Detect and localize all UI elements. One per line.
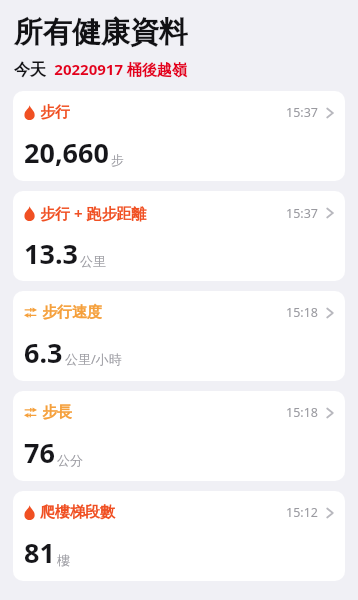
staticText: 15:18 bbox=[286, 304, 318, 321]
staticText: 所有健康資料 bbox=[14, 14, 188, 51]
other: Activity bbox=[24, 105, 35, 120]
staticText: 76 bbox=[24, 434, 55, 471]
button[interactable]: Pace bbox=[13, 291, 345, 381]
staticText: 公里/小時 bbox=[65, 350, 122, 368]
staticText: 樓 bbox=[57, 552, 70, 568]
staticText: 公分 bbox=[57, 452, 83, 468]
staticText: 13.3 bbox=[24, 235, 78, 272]
other: Activity bbox=[24, 206, 35, 221]
other: Open details bbox=[326, 306, 334, 320]
button[interactable]: Activity bbox=[13, 491, 345, 581]
other: Open details bbox=[326, 506, 334, 520]
button[interactable]: Activity bbox=[13, 191, 345, 281]
other: Open details bbox=[326, 406, 334, 420]
staticText: 步行 + 跑步距離 bbox=[40, 203, 147, 223]
staticText: 步 bbox=[111, 152, 124, 168]
staticText: 6.3 bbox=[24, 334, 63, 371]
staticText: 15:37 bbox=[286, 104, 318, 121]
staticText: 81 bbox=[24, 534, 55, 571]
button[interactable]: Activity bbox=[13, 91, 345, 181]
other: Open details bbox=[326, 206, 334, 220]
staticText: 20,660 bbox=[24, 134, 109, 171]
staticText: 15:37 bbox=[286, 205, 318, 222]
other: Pace bbox=[24, 406, 37, 419]
staticText: 今天 20220917 桶後越嶺 bbox=[14, 58, 187, 80]
button[interactable]: Pace bbox=[13, 391, 345, 481]
staticText: 步長 bbox=[42, 403, 72, 422]
other: Activity bbox=[24, 505, 35, 520]
staticText: 步行 bbox=[40, 103, 70, 122]
staticText: 步行速度 bbox=[42, 303, 102, 322]
staticText: 15:18 bbox=[286, 404, 318, 421]
other: Pace bbox=[24, 306, 37, 319]
staticText: 爬樓梯段數 bbox=[40, 503, 115, 522]
staticText: 15:12 bbox=[286, 504, 318, 521]
other: Open details bbox=[326, 106, 334, 120]
staticText: 公里 bbox=[80, 253, 106, 269]
